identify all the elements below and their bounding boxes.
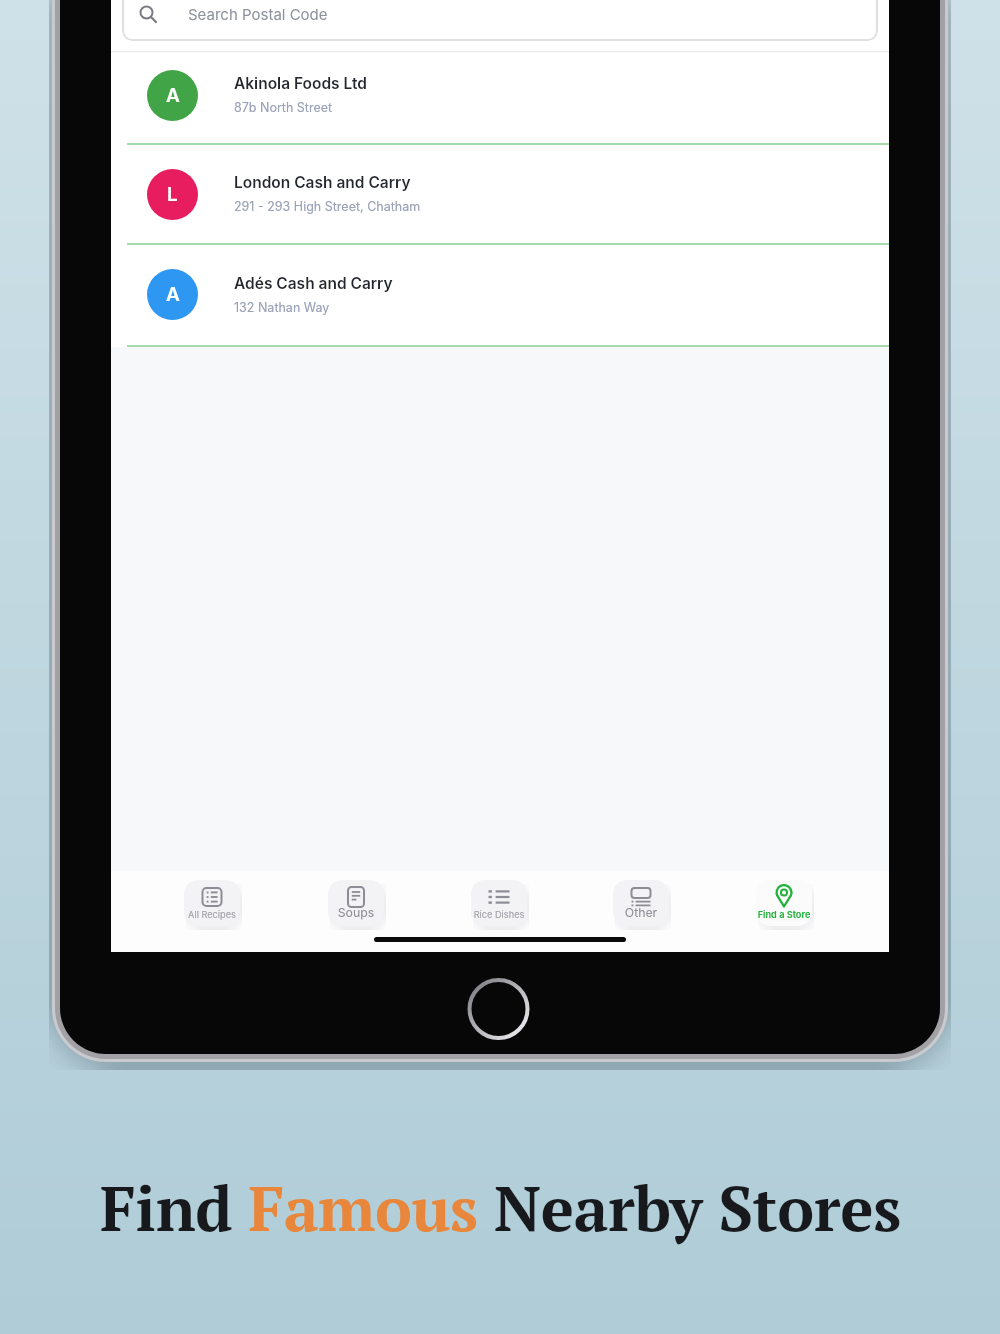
button[interactable]: A <box>111 245 889 345</box>
staticText: Search Postal Code <box>188 5 328 23</box>
button[interactable]: All Recipes <box>174 874 250 930</box>
staticText: All Recipes <box>174 909 250 920</box>
staticText: London Cash and Carry <box>234 173 411 192</box>
staticText: Find Famous Nearby Stores <box>100 1167 901 1249</box>
button[interactable]: Rice Dishes <box>461 874 537 930</box>
button[interactable]: Find a Store <box>746 874 822 930</box>
staticText: 132 Nathan Way <box>234 300 330 315</box>
staticText: Other <box>603 905 679 920</box>
staticText: Rice Dishes <box>461 909 537 920</box>
staticText: L <box>167 183 178 206</box>
staticText: A <box>166 283 180 306</box>
staticText: Akinola Foods Ltd <box>234 74 367 93</box>
button[interactable]: L <box>111 145 889 243</box>
staticText: A <box>166 84 180 107</box>
staticText: 291 - 293 High Street, Chatham <box>234 199 421 214</box>
staticText: Adés Cash and Carry <box>234 274 393 293</box>
button[interactable]: A <box>111 52 889 143</box>
staticText: 87b North Street <box>234 100 333 115</box>
button[interactable]: Other <box>603 874 679 930</box>
button[interactable]: Soups <box>318 874 394 930</box>
staticText: Find a Store <box>746 909 822 920</box>
button[interactable] <box>122 0 878 41</box>
staticText: Soups <box>318 905 394 920</box>
